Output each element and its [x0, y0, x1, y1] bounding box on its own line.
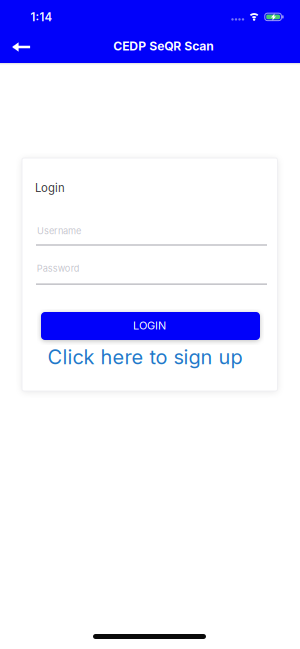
staticText: Click here to sign up: [47, 345, 242, 369]
staticText: LOGIN: [133, 319, 166, 332]
staticText: Username: [37, 225, 81, 236]
staticText: Login: [35, 181, 65, 195]
staticText: Password: [37, 263, 80, 274]
staticText: CEDP SeQR Scan: [113, 39, 214, 53]
staticText: 1:14: [31, 10, 53, 24]
